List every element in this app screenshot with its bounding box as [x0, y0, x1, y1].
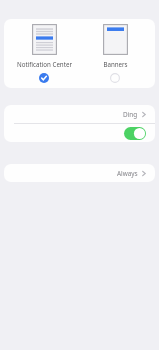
staticText: Always	[117, 169, 138, 178]
button[interactable]: Banners	[84, 19, 146, 83]
staticText: Banners	[103, 60, 128, 68]
staticText: Notification Center	[17, 60, 72, 68]
staticText: Ding	[123, 110, 138, 119]
button[interactable]: Ding	[4, 105, 155, 123]
button[interactable]: Toggle alerts	[4, 124, 155, 142]
button[interactable]: Notification Center	[13, 19, 75, 83]
button[interactable]: Always	[4, 164, 155, 182]
